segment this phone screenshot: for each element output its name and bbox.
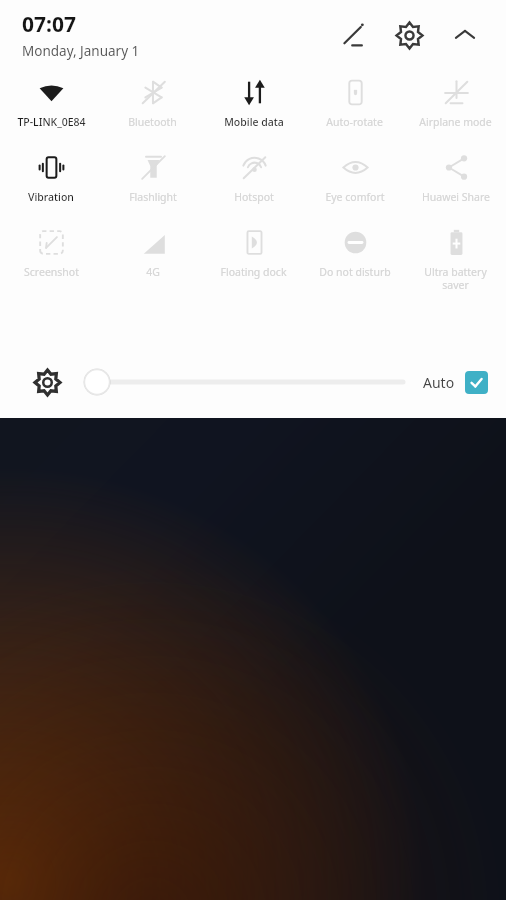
staticText: Screenshot (24, 265, 79, 279)
staticText: TP-LINK_0E84 (17, 115, 86, 129)
staticText: Flashlight (129, 190, 177, 204)
button[interactable]: Vibration (0, 145, 102, 206)
button[interactable]: TP-LINK_0E84 (0, 70, 102, 131)
button[interactable]: Flashlight (102, 145, 203, 206)
staticText: Vibration (28, 190, 74, 204)
staticText: Mobile data (224, 115, 284, 129)
button[interactable] (82, 367, 407, 397)
staticText: Airplane mode (419, 115, 492, 129)
button[interactable]: Brightness (30, 365, 64, 399)
button[interactable]: Bluetooth (102, 70, 203, 131)
button[interactable]: Do not disturb (304, 220, 405, 281)
button[interactable]: Settings (386, 12, 432, 58)
staticText: 07:07 (22, 10, 76, 39)
staticText: Floating dock (220, 265, 287, 279)
staticText: Ultra battery saver (424, 265, 487, 292)
button[interactable]: Auto-rotate (304, 70, 405, 131)
button[interactable]: Collapse (442, 12, 488, 58)
staticText: Auto (423, 373, 455, 392)
staticText: Eye comfort (325, 190, 385, 204)
button[interactable]: Mobile data (203, 70, 304, 131)
button[interactable]: Floating dock (203, 220, 304, 281)
button[interactable]: Eye comfort (304, 145, 405, 206)
staticText: Hotspot (234, 190, 274, 204)
button[interactable]: Auto (423, 371, 488, 394)
staticText: Do not disturb (319, 265, 391, 279)
button[interactable]: Ultra battery saver (405, 220, 506, 294)
staticText: Monday, January 1 (22, 42, 140, 60)
button[interactable]: Screenshot (0, 220, 102, 281)
staticText: Auto-rotate (326, 115, 383, 129)
staticText: Bluetooth (128, 115, 177, 129)
button[interactable]: 4G (102, 220, 203, 281)
button[interactable]: Airplane mode (405, 70, 506, 131)
staticText: Huawei Share (422, 190, 490, 204)
button[interactable]: Hotspot (203, 145, 304, 206)
button[interactable]: Edit (330, 12, 376, 58)
staticText: 4G (146, 265, 160, 279)
button[interactable]: Huawei Share (405, 145, 506, 206)
